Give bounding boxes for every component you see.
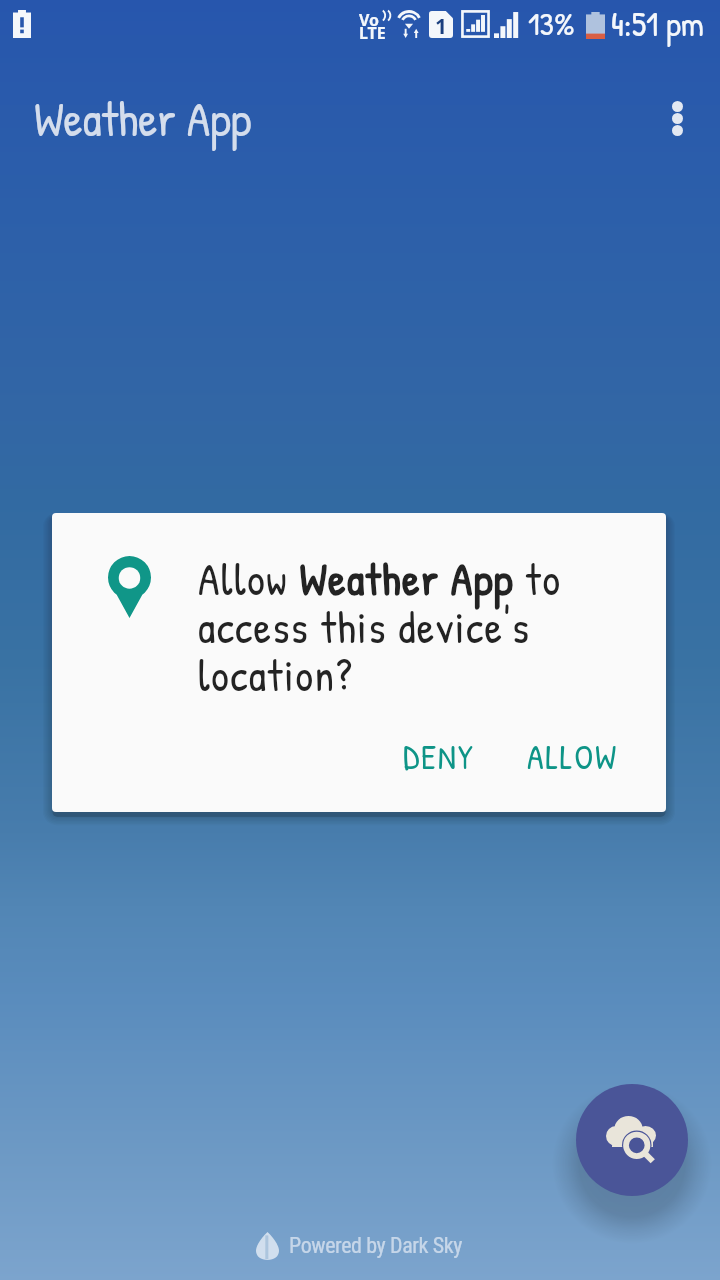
button[interactable]: Search weather: [576, 1084, 688, 1196]
button[interactable]: More options: [649, 90, 705, 146]
staticText: 4:51 pm: [611, 1, 704, 47]
staticText: LTE: [359, 22, 386, 44]
button[interactable]: DENY: [383, 718, 495, 796]
staticText: Weather App: [34, 86, 252, 151]
button[interactable]: ALLOW: [495, 718, 638, 796]
staticText: Powered by Dark Sky: [289, 1233, 463, 1259]
staticText: DENY: [403, 734, 475, 780]
staticText: Allow Weather App to access this device'…: [198, 549, 602, 705]
staticText: 13%: [528, 2, 575, 45]
staticText: 1: [435, 12, 448, 39]
staticText: Vo: [359, 9, 380, 31]
staticText: ALLOW: [527, 734, 618, 780]
button[interactable]: Powered by Dark Sky: [256, 1232, 463, 1260]
